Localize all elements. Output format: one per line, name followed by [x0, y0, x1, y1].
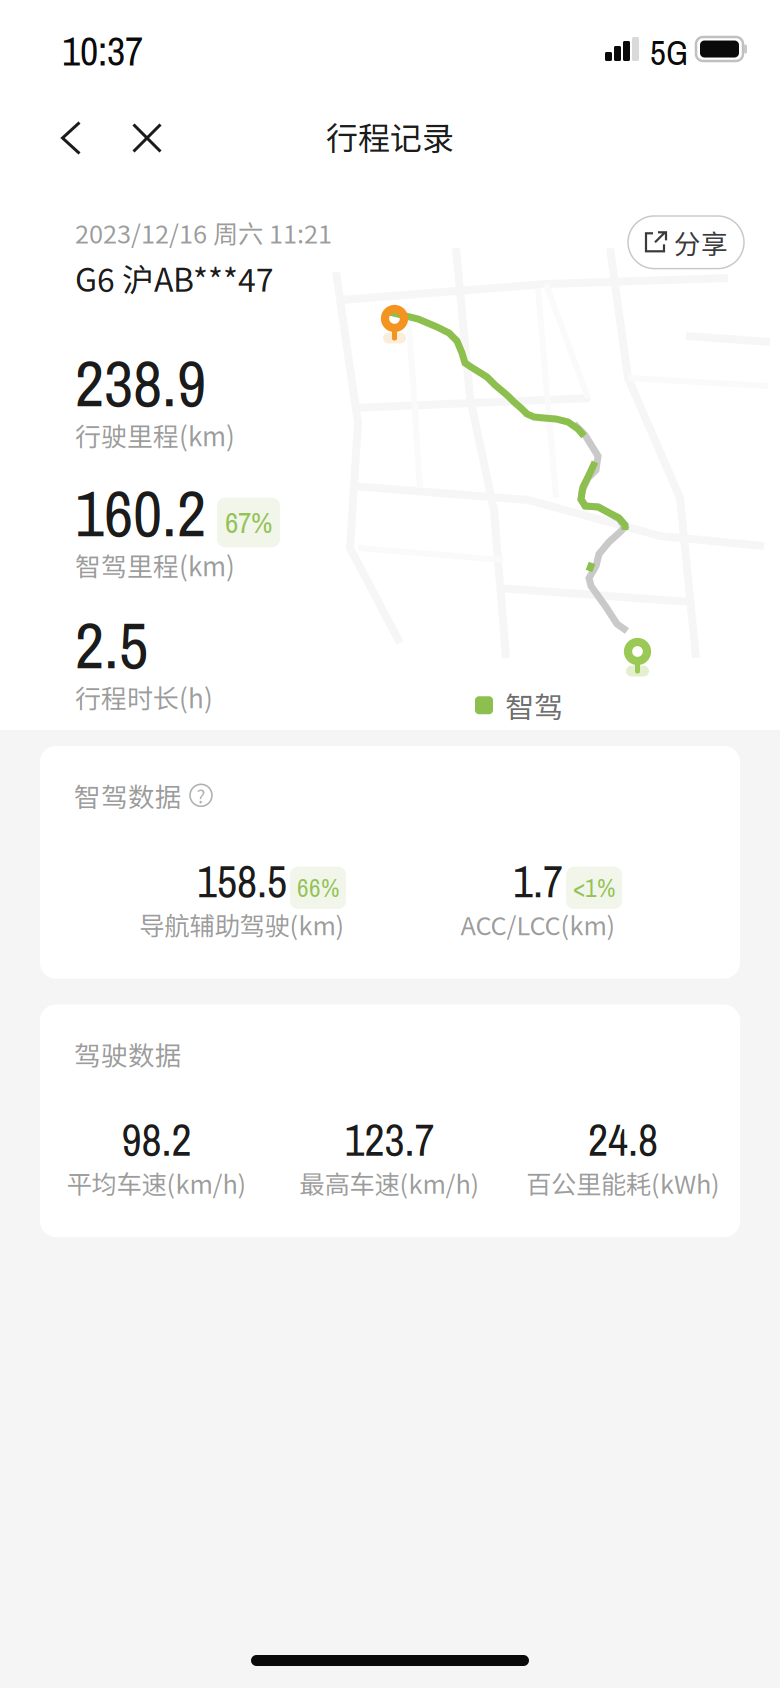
staticText: 160.2 — [75, 470, 206, 556]
staticText: 行程时长(h) — [75, 678, 213, 716]
staticText: ACC/LCC(km) — [460, 906, 615, 943]
staticText: 智驾 — [505, 684, 563, 726]
staticText: 1.7 — [513, 852, 563, 911]
button[interactable]: 分享 — [628, 216, 744, 269]
staticText: G6 沪AB***47 — [75, 255, 274, 301]
staticText: 67% — [225, 503, 272, 542]
staticText: 66% — [297, 871, 339, 905]
staticText: 2023/12/16 周六 11:21 — [75, 214, 332, 251]
staticText: <1% — [573, 871, 615, 905]
staticText: 238.9 — [75, 340, 206, 426]
staticText: 百公里能耗(kWh) — [526, 1164, 720, 1201]
staticText: 5G — [650, 29, 688, 76]
staticText: 98.2 — [121, 1110, 191, 1169]
staticText: 24.8 — [588, 1110, 658, 1169]
staticText: 导航辅助驾驶(km) — [139, 906, 344, 943]
staticText: 10:37 — [62, 24, 143, 78]
staticText: 123.7 — [344, 1110, 434, 1169]
staticText: 行程记录 — [326, 113, 454, 159]
staticText: 2.5 — [75, 602, 148, 688]
button[interactable]: 返回 — [46, 111, 96, 165]
staticText: 分享 — [674, 223, 728, 262]
staticText: 行驶里程(km) — [75, 416, 235, 454]
staticText: 158.5 — [197, 852, 287, 911]
staticText: 最高车速(km/h) — [299, 1164, 479, 1201]
staticText: 智驾数据 — [74, 776, 182, 815]
button[interactable]: 关闭 — [122, 111, 172, 165]
staticText: 驾驶数据 — [74, 1035, 182, 1073]
staticText: 智驾里程(km) — [75, 546, 235, 584]
staticText: ? — [196, 782, 205, 809]
staticText: 平均车速(km/h) — [66, 1164, 246, 1201]
